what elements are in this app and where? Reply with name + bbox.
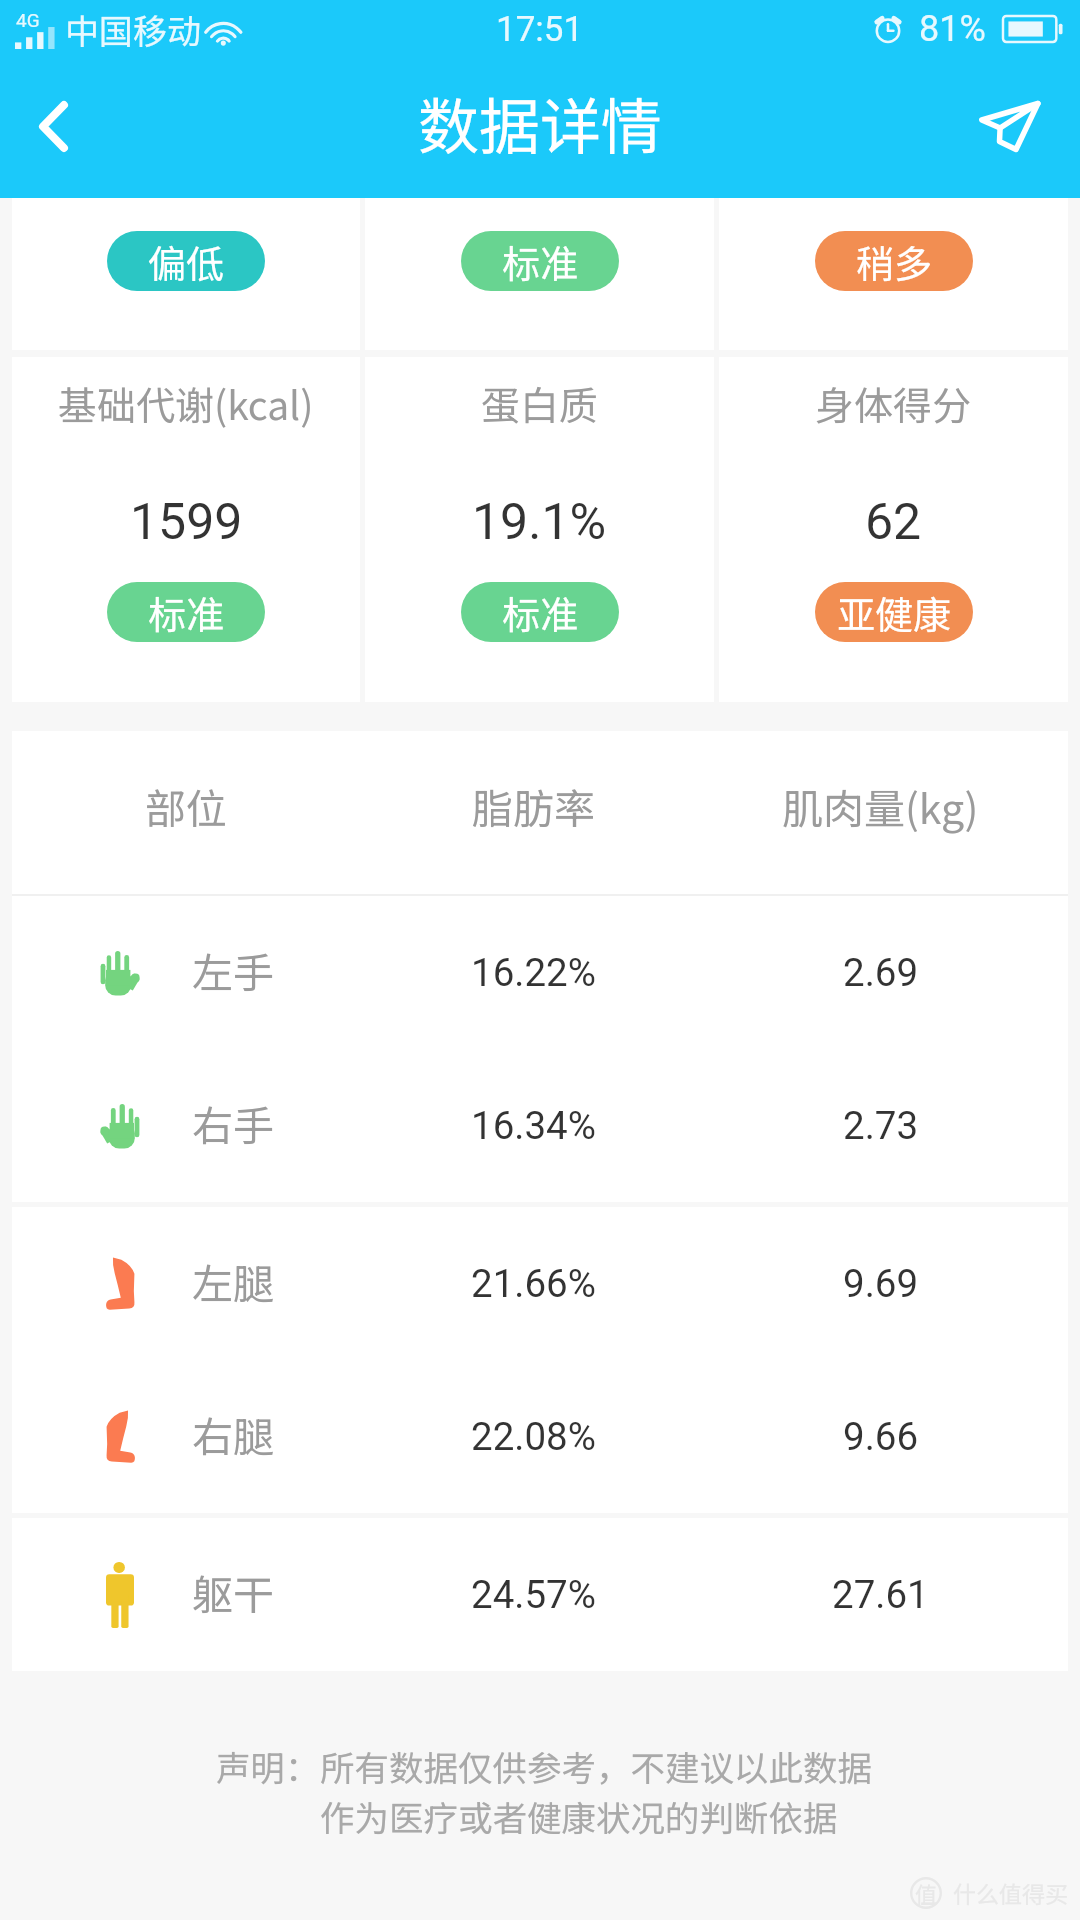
staticText: 9.66: [843, 1414, 919, 1459]
staticText: 右腿: [192, 1404, 274, 1463]
staticText: 中国移动: [65, 5, 201, 54]
button[interactable]: 身体得分: [719, 357, 1068, 702]
staticText: 偏低: [148, 234, 225, 289]
staticText: 4G: [16, 9, 40, 31]
staticText: 基础代谢(kcal): [58, 375, 314, 431]
button[interactable]: 标准: [365, 198, 714, 350]
staticText: 左手: [192, 940, 274, 999]
staticText: 19.1%: [472, 493, 607, 552]
staticText: 2.69: [843, 950, 919, 995]
button[interactable]: 稍多: [719, 198, 1068, 350]
staticText: 9.69: [843, 1261, 919, 1306]
staticText: 蛋白质: [481, 375, 599, 431]
button[interactable]: 左腿: [12, 1207, 1054, 1360]
staticText: 22.08%: [471, 1414, 596, 1459]
staticText: 身体得分: [815, 375, 972, 431]
staticText: 62: [865, 493, 922, 552]
staticText: 作为医疗或者健康状况的判断依据: [320, 1791, 838, 1841]
button[interactable]: 左手: [12, 896, 1054, 1049]
staticText: 标准: [502, 585, 579, 640]
staticText: 声明：: [216, 1741, 320, 1791]
staticText: 16.22%: [471, 950, 596, 995]
button[interactable]: Back: [0, 58, 110, 198]
button[interactable]: 右手: [12, 1049, 1054, 1202]
button[interactable]: 偏低: [12, 198, 360, 350]
staticText: 数据详情: [418, 78, 663, 166]
staticText: 所有数据仅供参考，不建议以此数据: [320, 1741, 872, 1791]
button[interactable]: Share: [950, 58, 1080, 198]
staticText: 81%: [919, 8, 986, 50]
staticText: 躯干: [192, 1562, 274, 1621]
staticText: 脂肪率: [472, 776, 595, 835]
staticText: 左腿: [192, 1251, 274, 1310]
staticText: 标准: [502, 234, 579, 289]
staticText: 17:51: [496, 9, 584, 50]
staticText: 值: [915, 1877, 938, 1909]
staticText: 16.34%: [471, 1103, 596, 1148]
staticText: 2.73: [843, 1103, 919, 1148]
staticText: 24.57%: [471, 1572, 596, 1617]
staticText: 27.61: [832, 1572, 929, 1617]
button[interactable]: 右腿: [12, 1360, 1054, 1513]
staticText: 亚健康: [837, 585, 952, 640]
staticText: 稍多: [856, 234, 933, 289]
staticText: 肌肉量(kg): [782, 776, 979, 835]
button[interactable]: 躯干: [12, 1518, 1054, 1671]
button[interactable]: 蛋白质: [365, 357, 714, 702]
staticText: 什么值得买: [953, 1876, 1068, 1909]
staticText: 右手: [192, 1093, 274, 1152]
staticText: 部位: [145, 776, 227, 835]
button[interactable]: 基础代谢(kcal): [12, 357, 360, 702]
staticText: 21.66%: [471, 1261, 596, 1306]
staticText: 标准: [148, 585, 225, 640]
staticText: 1599: [130, 493, 243, 552]
